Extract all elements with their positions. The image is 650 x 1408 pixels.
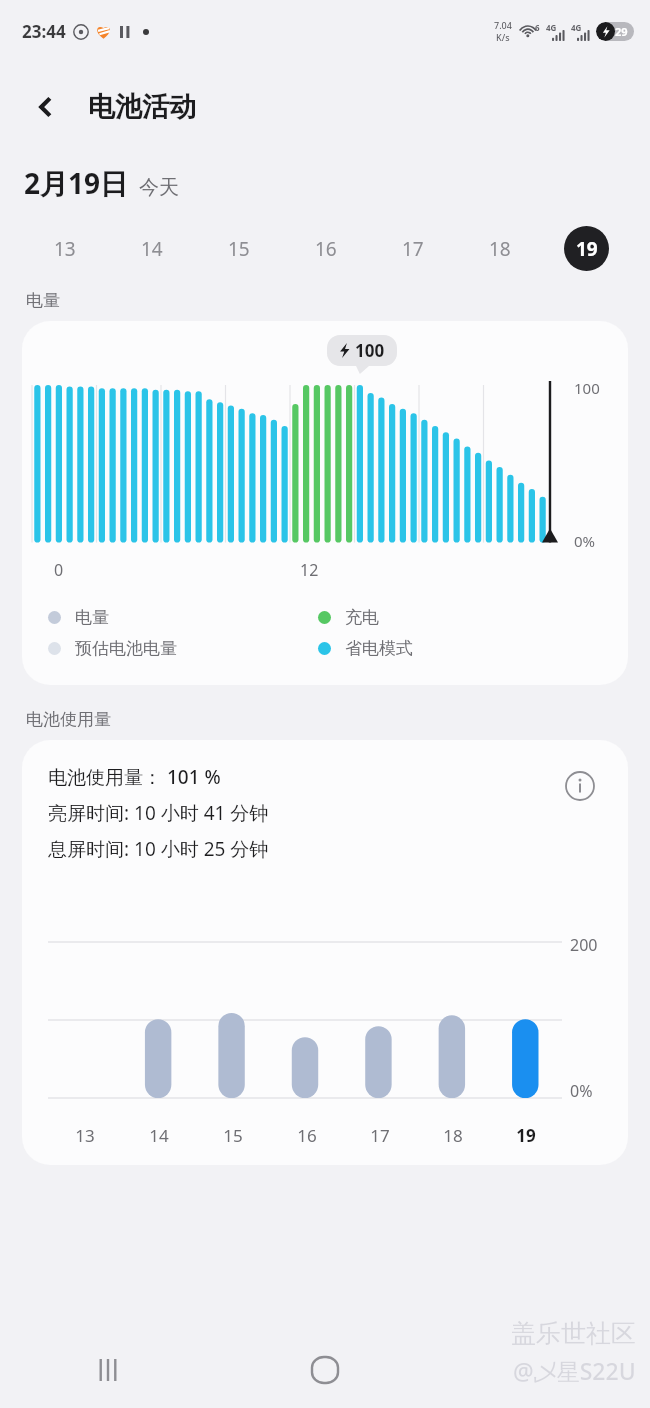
staticText: 省电模式 xyxy=(345,638,413,659)
staticText: 电池使用量： xyxy=(48,764,167,790)
button[interactable]: 16 xyxy=(282,224,369,272)
staticText: 0 xyxy=(54,559,64,581)
button[interactable]: 19 xyxy=(543,224,630,272)
staticText: 0% xyxy=(570,1080,593,1102)
button[interactable]: 100 xyxy=(22,321,628,685)
staticText: K/s xyxy=(496,31,510,43)
staticText: 13 xyxy=(54,236,76,262)
staticText: 16 xyxy=(315,236,337,262)
staticText: 200 xyxy=(570,934,598,956)
staticText: 14 xyxy=(149,1124,169,1147)
button[interactable]: 最近任务 xyxy=(0,1332,216,1408)
button[interactable]: 14 xyxy=(108,224,195,272)
button[interactable]: 17 xyxy=(369,224,456,272)
staticText: 101 % xyxy=(167,764,221,790)
staticText: 18 xyxy=(489,236,511,262)
button[interactable]: 返回 xyxy=(433,1332,650,1408)
button[interactable]: 18 xyxy=(456,224,543,272)
staticText: 17 xyxy=(370,1124,390,1147)
staticText: 14 xyxy=(141,236,163,262)
staticText: 亮屏时间: 10 小时 41 分钟 xyxy=(48,800,269,826)
staticText: 19 xyxy=(576,236,598,262)
staticText: 17 xyxy=(402,236,424,262)
staticText: 18 xyxy=(443,1124,463,1147)
staticText: 29 xyxy=(615,24,628,39)
staticText: 电池活动 xyxy=(88,90,196,124)
staticText: 0% xyxy=(574,531,596,551)
button[interactable]: 15 xyxy=(195,224,282,272)
button[interactable]: 返回 xyxy=(20,81,72,133)
staticText: 100 xyxy=(574,378,600,398)
staticText: 100 xyxy=(355,339,385,362)
staticText: 23:44 xyxy=(22,20,66,43)
staticText: 息屏时间: 10 小时 25 分钟 xyxy=(48,836,269,862)
staticText: 4G xyxy=(546,22,557,33)
staticText: @乄星S22U xyxy=(513,1355,636,1386)
staticText: 15 xyxy=(223,1124,243,1147)
button[interactable]: 主页 xyxy=(216,1332,433,1408)
button[interactable]: 13 xyxy=(20,224,108,272)
staticText: 13 xyxy=(75,1124,95,1147)
staticText: 6 xyxy=(535,22,540,33)
staticText: 2月19日 xyxy=(24,164,129,202)
staticText: 12 xyxy=(300,559,319,581)
button[interactable]: 信息 xyxy=(558,764,602,808)
staticText: 4G xyxy=(571,22,582,33)
staticText: 16 xyxy=(297,1124,317,1147)
staticText: 15 xyxy=(228,236,250,262)
staticText: 预估电池电量 xyxy=(75,638,177,659)
staticText: 7.04 xyxy=(494,19,512,31)
staticText: 今天 xyxy=(139,175,179,200)
staticText: 充电 xyxy=(345,607,379,628)
staticText: 电量 xyxy=(75,607,109,628)
staticText: 电量 xyxy=(26,290,60,311)
staticText: 电池使用量 xyxy=(26,709,111,730)
button[interactable]: 电池使用量： xyxy=(22,740,628,1165)
staticText: 19 xyxy=(516,1124,536,1147)
staticText: 盖乐世社区 xyxy=(511,1318,636,1349)
